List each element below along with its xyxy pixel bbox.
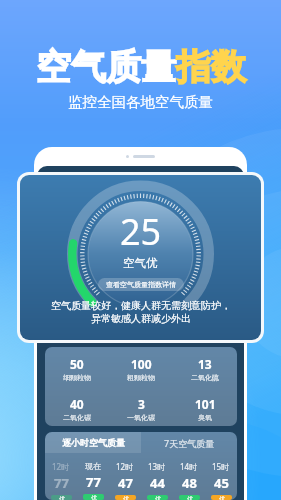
- staticText: 14时: [180, 461, 198, 472]
- staticText: 77: [86, 473, 101, 491]
- staticText: 25: [120, 207, 162, 256]
- staticText: 二氧化碳: [63, 413, 91, 422]
- staticText: 细颗粒物: [63, 373, 91, 382]
- button[interactable]: 逐小时空气质量: [45, 432, 141, 453]
- staticText: 44: [150, 474, 165, 492]
- staticText: 优: [219, 495, 225, 500]
- staticText: 优: [91, 494, 97, 500]
- staticText: 3: [138, 396, 145, 412]
- staticText: 逐小时空气质量: [62, 437, 125, 448]
- staticText: 47: [118, 474, 133, 492]
- staticText: 优: [187, 495, 193, 500]
- staticText: 监控全国各地空气质量: [68, 93, 213, 111]
- staticText: 空气优: [123, 256, 158, 270]
- staticText: 45: [214, 474, 229, 492]
- staticText: 一氧化碳: [127, 413, 155, 422]
- staticText: 101: [195, 396, 216, 412]
- staticText: 粗颗粒物: [127, 373, 155, 382]
- staticText: 12时: [116, 461, 134, 472]
- staticText: 优: [59, 495, 65, 500]
- staticText: 臭氧: [198, 413, 212, 422]
- staticText: 查看空气质量指数详情: [106, 280, 176, 289]
- staticText: 77: [54, 474, 69, 492]
- button[interactable]: 查看空气质量指数详情: [98, 278, 184, 291]
- button[interactable]: 7天空气质量: [141, 432, 237, 453]
- staticText: 优: [155, 495, 161, 500]
- staticText: 40: [70, 396, 84, 412]
- staticText: 13时: [148, 461, 166, 472]
- staticText: 13: [198, 356, 212, 372]
- staticText: 空气质量: [36, 45, 176, 89]
- staticText: 12时: [52, 461, 70, 472]
- staticText: 7天空气质量: [164, 437, 215, 449]
- staticText: 优: [123, 495, 129, 500]
- staticText: 现在: [85, 461, 101, 471]
- staticText: 100: [131, 356, 152, 372]
- staticText: 48: [182, 474, 197, 492]
- staticText: 50: [70, 356, 84, 372]
- staticText: 空气质量较好，健康人群无需刻意防护， 异常敏感人群减少外出: [51, 299, 231, 325]
- staticText: 指数: [176, 45, 246, 89]
- staticText: 二氧化硫: [191, 373, 219, 382]
- staticText: 15时: [212, 461, 230, 472]
